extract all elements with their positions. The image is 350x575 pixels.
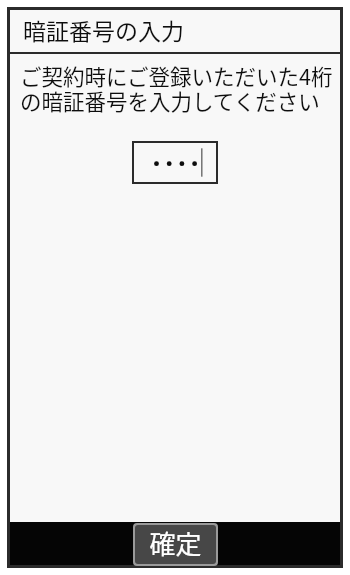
button[interactable]: PIN input field (134, 143, 216, 182)
staticText: 確定 (149, 525, 202, 562)
button[interactable]: 確定 (135, 525, 216, 564)
button[interactable]: 暗証番号の入力 (10, 10, 340, 52)
staticText: 暗証番号の入力 (23, 13, 184, 46)
staticText: ご契約時にご登録いただいた4桁 の暗証番号を入力してください (20, 60, 333, 117)
